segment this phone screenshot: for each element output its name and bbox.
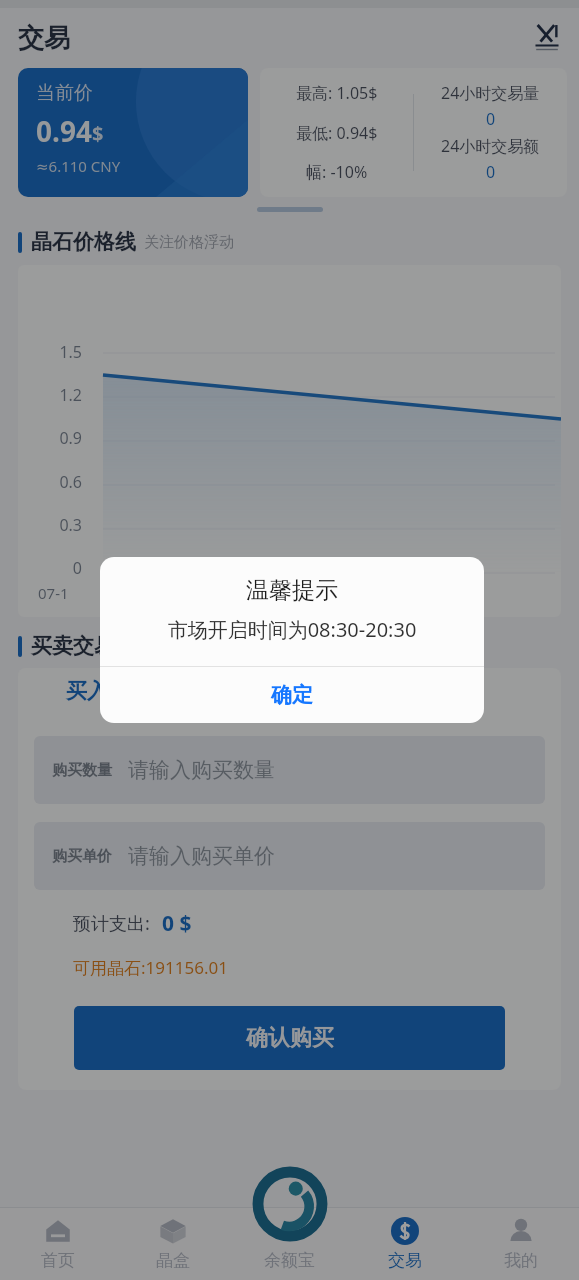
staticText: 买卖交易 [31,633,115,659]
staticText: 买入晶石 [66,678,150,704]
button[interactable]: 购买数量 [52,736,545,804]
staticText: 24小时交易额 [441,135,540,157]
staticText: 0 [486,161,496,183]
button[interactable]: 当前价 [18,68,248,197]
staticText: 最低: 0.94$ [296,122,378,144]
button[interactable]: Brand logo [529,20,565,56]
staticText: 请输入购买数量 [128,757,275,783]
staticText: 1.2 [44,384,82,406]
other: 余额宝 [258,1172,322,1236]
staticText: 确定 [271,682,313,708]
staticText: 0.6 [44,471,82,493]
staticText: 卖出晶石 [228,679,304,703]
staticText: 晶盒 [156,1250,190,1271]
staticText: 1.5 [44,341,82,363]
button[interactable]: 最高: 1.05$ [260,68,567,197]
staticText: 温馨提示 [100,576,484,605]
staticText: ≈6.110 CNY [36,156,121,176]
button[interactable]: 余额宝 [231,1208,347,1280]
staticText: 请输入购买单价 [128,843,275,869]
button[interactable]: 确认购买 [74,1006,505,1070]
staticText: 交易自由 [123,637,183,656]
button[interactable]: 购买单价 [52,822,545,890]
staticText: 购买单价 [52,847,112,866]
staticText: 0 [486,108,496,130]
staticText: 0.3 [44,514,82,536]
staticText: 晶石价格线 [31,229,136,255]
staticText: 0 [44,557,82,579]
staticText: 24小时交易量 [441,82,540,104]
button[interactable]: 首页 [0,1208,115,1280]
staticText: 0.9 [44,427,82,449]
button[interactable]: 交易 [347,1208,463,1280]
staticText: $ [92,120,104,147]
button[interactable]: 我的 [463,1208,579,1280]
staticText: 余额宝 [264,1250,315,1271]
staticText: 交易 [388,1250,422,1271]
staticText: 幅: -10% [306,161,368,183]
staticText: 市场开启时间为08:30-20:30 [100,616,484,643]
staticText: 确认购买 [246,1024,334,1052]
staticText: 0 $ [162,909,192,938]
staticText: 最高: 1.05$ [296,82,378,104]
button[interactable]: 买入晶石 [18,668,198,714]
staticText: 交易 [18,22,70,55]
staticText: 关注价格浮动 [144,233,234,252]
staticText: 购买数量 [52,761,112,780]
staticText: 0.94 [36,112,92,150]
staticText: 我的 [504,1250,538,1271]
staticText: 当前价 [36,81,93,105]
button[interactable]: 晶盒 [115,1208,231,1280]
button[interactable]: 卖出晶石 [198,668,333,714]
staticText: 首页 [41,1250,75,1271]
staticText: 预计支出: [73,911,150,936]
staticText: 07-1 [38,583,69,603]
staticText: 可用晶石:191156.01 [73,956,228,979]
button[interactable]: 确定 [100,667,484,723]
